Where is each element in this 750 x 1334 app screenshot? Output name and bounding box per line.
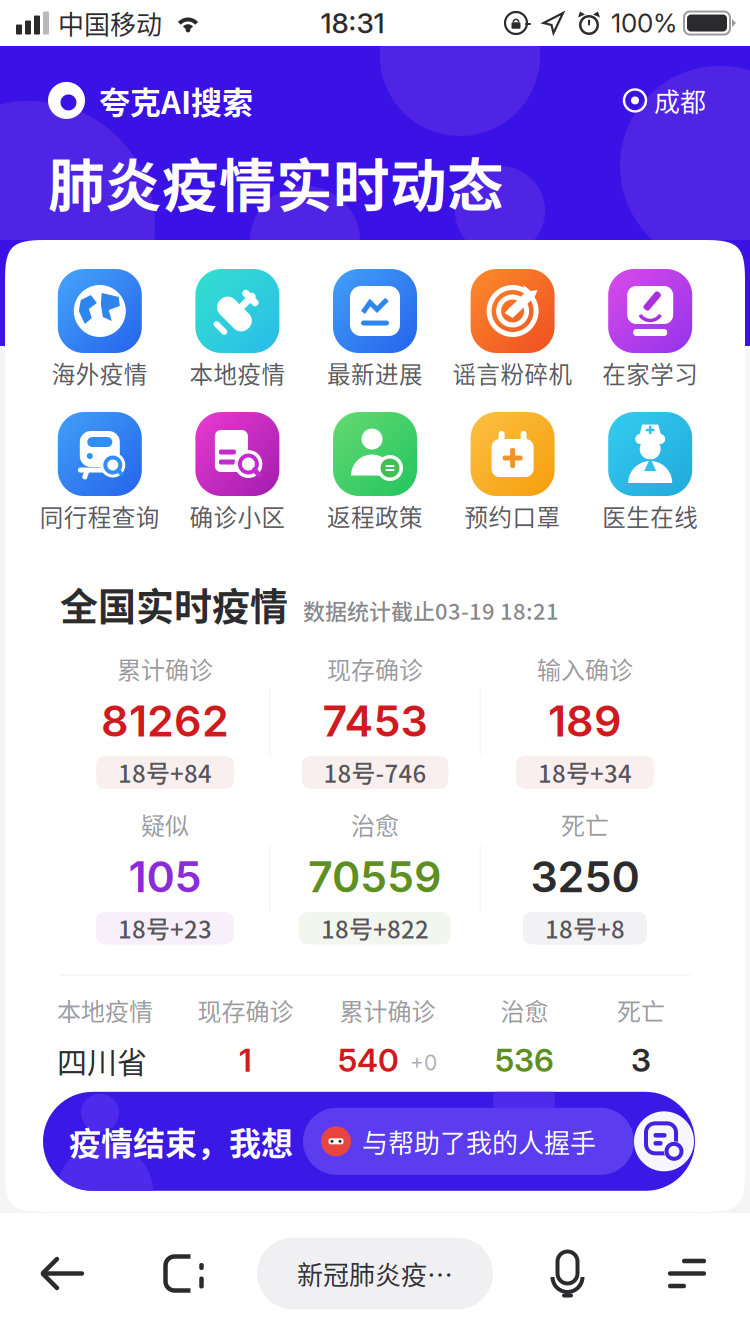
- button[interactable]: 医生在线: [581, 412, 719, 533]
- staticText: 四川省: [57, 1038, 147, 1082]
- staticText: 预约口罩: [465, 499, 561, 533]
- staticText: 最新进展: [327, 356, 423, 390]
- staticText: 536: [495, 1041, 554, 1079]
- staticText: 3250: [530, 851, 639, 903]
- button[interactable]: 疫情结束，我想: [49, 1092, 701, 1191]
- staticText: 7453: [322, 695, 427, 747]
- staticText: 死亡: [561, 807, 609, 842]
- staticText: 全国实时疫情: [60, 576, 288, 631]
- staticText: 本地疫情: [57, 993, 153, 1027]
- staticText: 1: [239, 1041, 252, 1079]
- button[interactable]: 最新进展: [306, 269, 444, 390]
- staticText: 返程政策: [327, 499, 423, 533]
- staticText: 成都: [654, 82, 706, 119]
- staticText: 18号+822: [321, 911, 429, 946]
- staticText: 18号+23: [118, 911, 212, 946]
- staticText: 70559: [308, 851, 442, 903]
- staticText: 189: [548, 695, 622, 747]
- button[interactable]: Back: [18, 1237, 108, 1309]
- staticText: 与帮助了我的人握手: [362, 1122, 596, 1160]
- staticText: 18号-746: [323, 755, 426, 790]
- button[interactable]: 返程政策: [306, 412, 444, 533]
- staticText: 疑似: [141, 807, 189, 842]
- button[interactable]: 新冠肺炎疫…: [257, 1238, 493, 1309]
- staticText: 100%: [611, 7, 677, 39]
- button[interactable]: 确诊小区: [169, 412, 306, 533]
- staticText: 医生在线: [602, 499, 698, 533]
- staticText: 新冠肺炎疫…: [297, 1255, 453, 1292]
- button[interactable]: 海外疫情: [31, 269, 169, 390]
- staticText: 累计确诊: [117, 651, 213, 686]
- button[interactable]: 成都: [624, 82, 706, 119]
- staticText: 在家学习: [602, 356, 698, 390]
- button[interactable]: 谣言粉碎机: [444, 269, 581, 390]
- button[interactable]: Tabs: [137, 1237, 227, 1309]
- staticText: 18号+34: [538, 755, 632, 790]
- staticText: 输入确诊: [537, 651, 633, 686]
- staticText: 现存确诊: [197, 993, 293, 1027]
- staticText: 105: [128, 851, 201, 903]
- staticText: 治愈: [500, 993, 548, 1027]
- staticText: +0: [410, 1050, 437, 1075]
- staticText: 数据统计截止03-19 18:21: [303, 594, 559, 626]
- staticText: 肺炎疫情实时动态: [48, 141, 504, 223]
- staticText: 18号+8: [545, 911, 625, 946]
- button[interactable]: 同行程查询: [31, 412, 169, 533]
- staticText: 确诊小区: [189, 499, 285, 533]
- staticText: 海外疫情: [52, 356, 148, 390]
- staticText: 现存确诊: [327, 651, 423, 686]
- staticText: 3: [631, 1041, 651, 1079]
- staticText: 夸克AI搜索: [99, 78, 253, 123]
- button[interactable]: 预约口罩: [444, 412, 581, 533]
- staticText: 本地疫情: [189, 356, 285, 390]
- staticText: 同行程查询: [40, 499, 160, 533]
- staticText: 治愈: [351, 807, 399, 842]
- staticText: 谣言粉碎机: [453, 356, 573, 390]
- staticText: 18号+84: [118, 755, 212, 790]
- button[interactable]: 在家学习: [581, 269, 719, 390]
- staticText: 累计确诊: [339, 993, 435, 1027]
- staticText: 540: [338, 1041, 399, 1079]
- staticText: 18:31: [320, 6, 384, 40]
- button[interactable]: Voice search: [522, 1237, 612, 1309]
- staticText: 81262: [101, 695, 229, 747]
- staticText: 疫情结束，我想: [69, 1118, 293, 1164]
- button[interactable]: Menu: [642, 1237, 732, 1309]
- button[interactable]: 本地疫情: [169, 269, 306, 390]
- staticText: 中国移动: [58, 4, 162, 42]
- staticText: 死亡: [617, 993, 665, 1027]
